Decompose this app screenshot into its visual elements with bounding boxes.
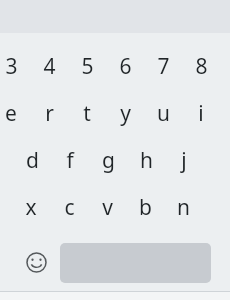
staticText: 6 [119,52,132,81]
button[interactable]: n [164,184,202,230]
staticText: d [26,146,39,175]
button[interactable]: y [106,90,144,136]
button[interactable]: i [182,90,220,136]
button[interactable]: t [68,90,106,136]
staticText: e [5,99,17,128]
staticText: 3 [5,52,18,81]
staticText: 7 [157,52,170,81]
button[interactable]: 7 [144,43,182,89]
staticText: y [120,99,131,128]
staticText: g [102,146,115,175]
button[interactable]: g [89,137,127,183]
staticText: 8 [195,52,208,81]
button[interactable]: 3 [0,43,30,89]
staticText: r [45,99,54,128]
button[interactable]: h [127,137,165,183]
staticText: b [139,193,152,222]
button[interactable]: u [144,90,182,136]
staticText: t [83,99,91,128]
button[interactable]: 6 [106,43,144,89]
staticText: 4 [43,52,56,81]
staticText: j [181,146,187,175]
button[interactable]: x [12,184,50,230]
button[interactable]: c [50,184,88,230]
button[interactable]: r [30,90,68,136]
staticText: c [64,193,75,222]
staticText: x [25,193,37,222]
button[interactable]: Emoji keyboard [16,240,56,284]
staticText: i [198,99,204,128]
button[interactable]: e [0,90,30,136]
button[interactable]: b [126,184,164,230]
button[interactable]: d [13,137,51,183]
button[interactable]: j [165,137,203,183]
button[interactable]: 5 [68,43,106,89]
staticText: f [66,146,74,175]
staticText: v [102,193,113,222]
staticText: h [140,146,153,175]
staticText: u [157,99,170,128]
staticText: n [177,193,190,222]
button[interactable]: 4 [30,43,68,89]
button[interactable]: 8 [182,43,220,89]
button[interactable]: v [88,184,126,230]
staticText: 5 [81,52,94,81]
button[interactable]: f [51,137,89,183]
